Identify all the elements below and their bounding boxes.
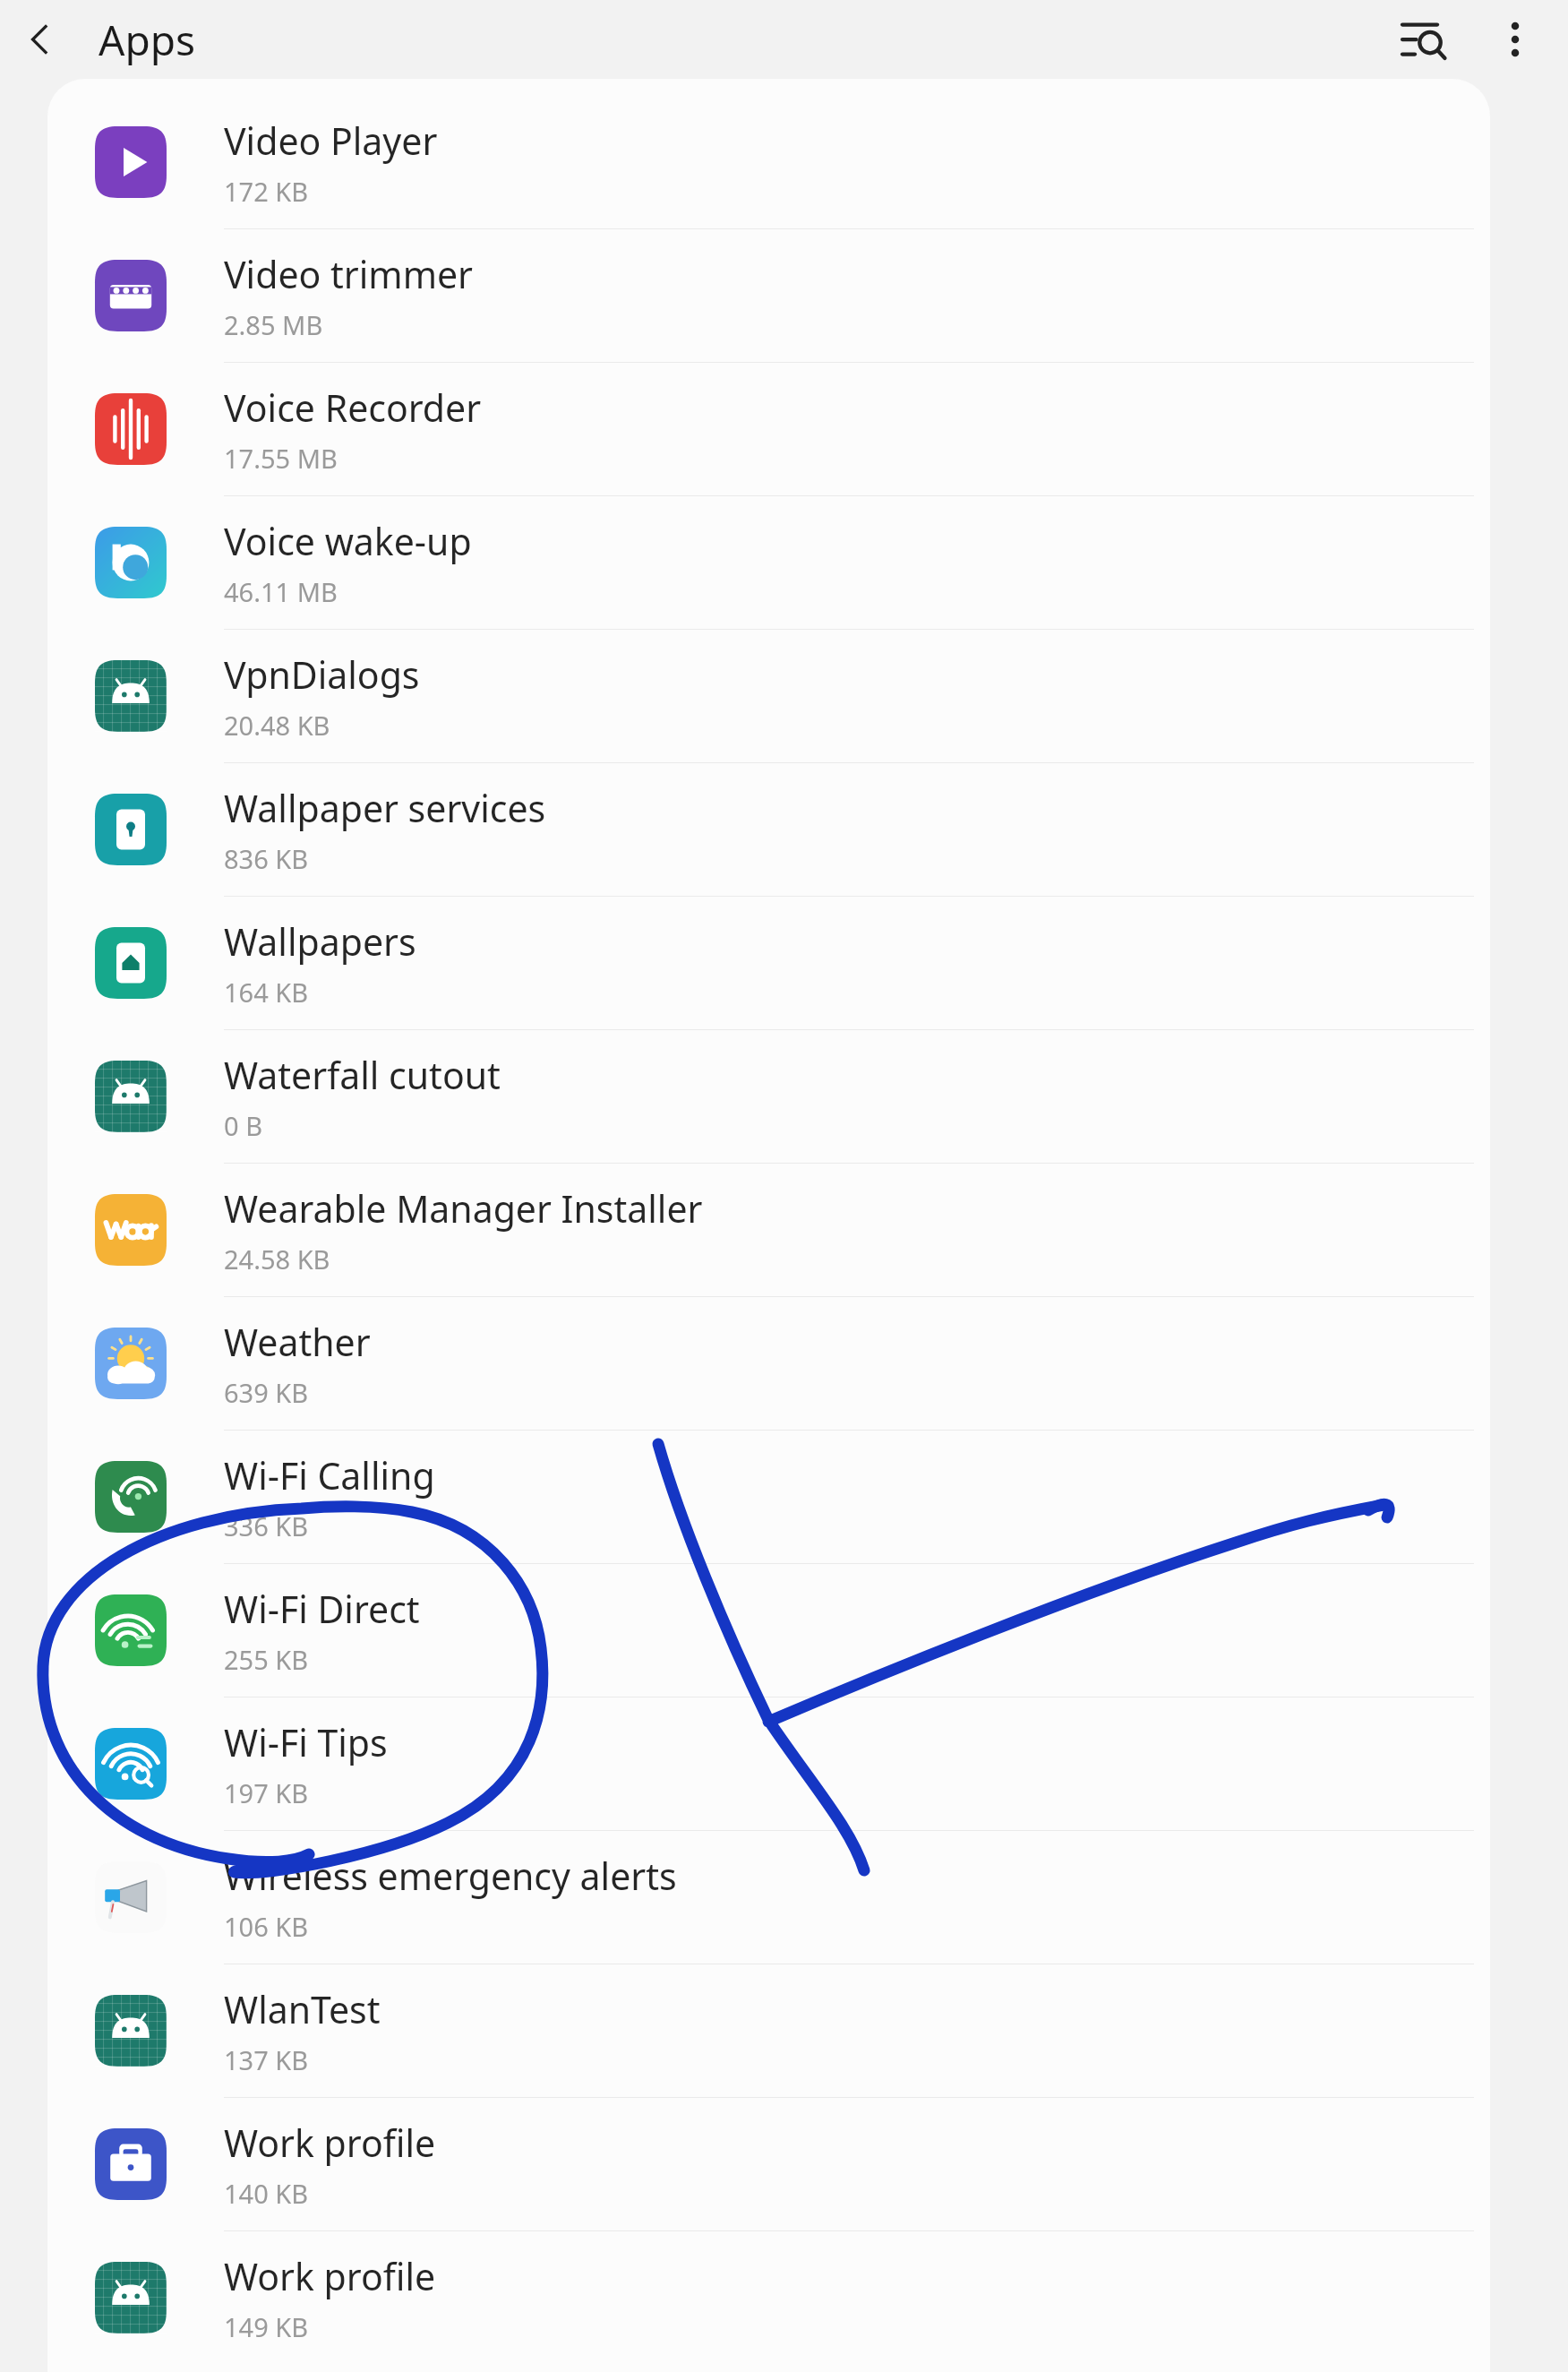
button[interactable]: Work profile: [47, 2230, 1490, 2364]
staticText: Wireless emergency alerts: [224, 1851, 677, 1901]
staticText: 149 KB: [224, 2309, 309, 2344]
staticText: 106 KB: [224, 1909, 309, 1944]
staticText: Wallpapers: [224, 916, 416, 967]
staticText: 836 KB: [224, 841, 309, 876]
staticText: Wi-Fi Direct: [224, 1584, 420, 1634]
staticText: 197 KB: [224, 1775, 309, 1810]
button[interactable]: Search: [1385, 1, 1462, 78]
button[interactable]: Waterfall cutout: [47, 1029, 1490, 1163]
staticText: 172 KB: [224, 174, 309, 209]
button[interactable]: Wi-Fi Direct: [47, 1563, 1490, 1697]
staticText: Voice Recorder: [224, 382, 482, 433]
button[interactable]: Voice wake-up: [47, 495, 1490, 629]
staticText: Video Player: [224, 116, 438, 166]
staticText: Apps: [99, 12, 196, 68]
staticText: Work profile: [224, 2251, 436, 2301]
button[interactable]: WlanTest: [47, 1964, 1490, 2097]
button[interactable]: Weather: [47, 1296, 1490, 1430]
button[interactable]: Work profile: [47, 2097, 1490, 2230]
staticText: 20.48 KB: [224, 708, 330, 743]
button[interactable]: Wi-Fi Tips: [47, 1697, 1490, 1830]
staticText: 639 KB: [224, 1375, 309, 1410]
staticText: Waterfall cutout: [224, 1050, 501, 1100]
staticText: Wi-Fi Calling: [224, 1450, 435, 1500]
staticText: Video trimmer: [224, 249, 474, 299]
button[interactable]: Wallpaper services: [47, 762, 1490, 896]
staticText: 0 B: [224, 1108, 262, 1143]
staticText: 140 KB: [224, 2176, 309, 2211]
staticText: 24.58 KB: [224, 1242, 330, 1276]
button[interactable]: Video trimmer: [47, 228, 1490, 362]
button[interactable]: More options: [1477, 1, 1554, 78]
button[interactable]: Wallpapers: [47, 896, 1490, 1029]
button[interactable]: Wi-Fi Calling: [47, 1430, 1490, 1563]
staticText: 336 KB: [224, 1508, 309, 1543]
staticText: 164 KB: [224, 975, 309, 1010]
button[interactable]: Wireless emergency alerts: [47, 1830, 1490, 1964]
button[interactable]: Back: [7, 7, 72, 72]
staticText: WlanTest: [224, 1984, 381, 2034]
staticText: Work profile: [224, 2118, 436, 2168]
staticText: 17.55 MB: [224, 441, 338, 476]
staticText: 137 KB: [224, 2042, 309, 2077]
staticText: 2.85 MB: [224, 307, 323, 342]
button[interactable]: Voice Recorder: [47, 362, 1490, 495]
staticText: Wearable Manager Installer: [224, 1183, 703, 1233]
button[interactable]: Video Player: [47, 95, 1490, 228]
staticText: Voice wake-up: [224, 516, 472, 566]
button[interactable]: VpnDialogs: [47, 629, 1490, 762]
staticText: 46.11 MB: [224, 574, 338, 609]
staticText: Wi-Fi Tips: [224, 1717, 388, 1767]
staticText: 255 KB: [224, 1642, 309, 1677]
staticText: Wallpaper services: [224, 783, 546, 833]
staticText: Weather: [224, 1317, 371, 1367]
staticText: VpnDialogs: [224, 649, 420, 700]
button[interactable]: Wearable Manager Installer: [47, 1163, 1490, 1296]
